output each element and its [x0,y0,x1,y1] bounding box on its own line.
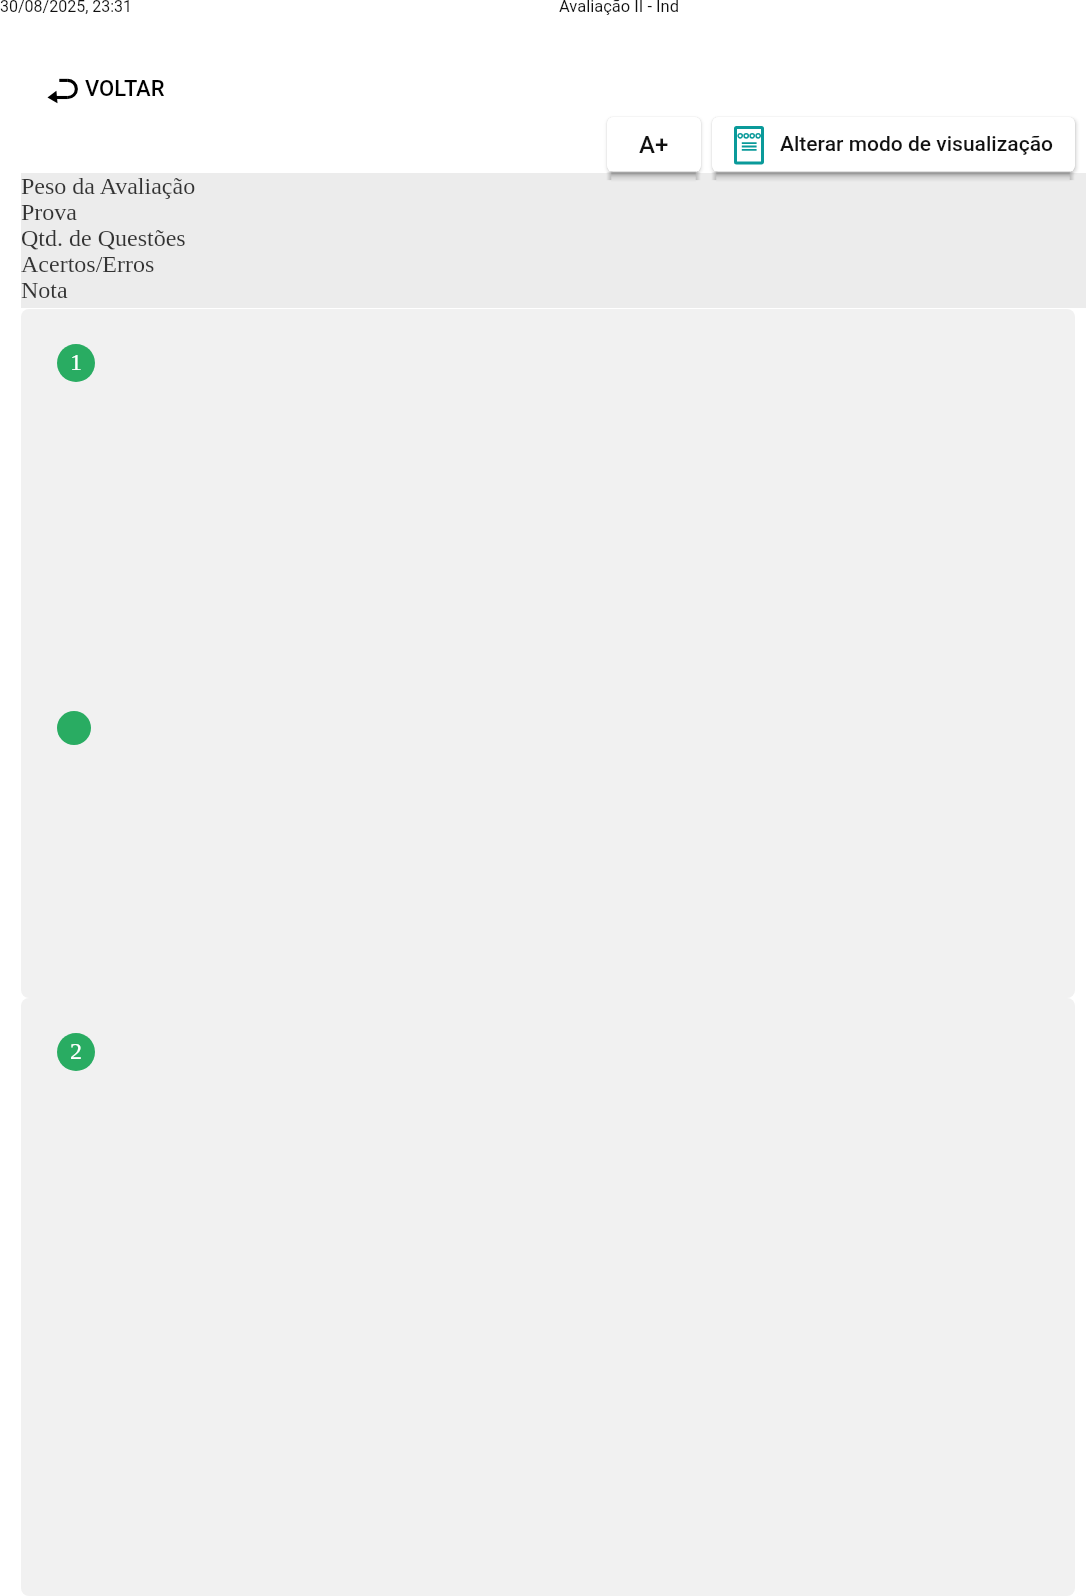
staticText: VOLTAR [85,76,165,102]
staticText: 30/08/2025, 23:31 [0,0,133,16]
other: Alterar modo de visualização [734,126,764,165]
staticText: A+ [639,131,669,159]
button[interactable]: Alterar modo de visualização [712,117,1075,172]
staticText: Avaliação II - Ind [559,0,679,16]
staticText: 1 [70,349,82,376]
staticText: Peso da Avaliação Prova Qtd. de Questões… [21,173,196,304]
staticText: 2 [70,1038,82,1065]
button[interactable]: A+ [607,117,701,172]
button[interactable]: Voltar [47,74,165,100]
button[interactable]: 2 [21,998,1075,1596]
staticText: Alterar modo de visualização [780,132,1053,157]
button[interactable]: 1 [21,309,1075,998]
other: Voltar [47,79,80,105]
